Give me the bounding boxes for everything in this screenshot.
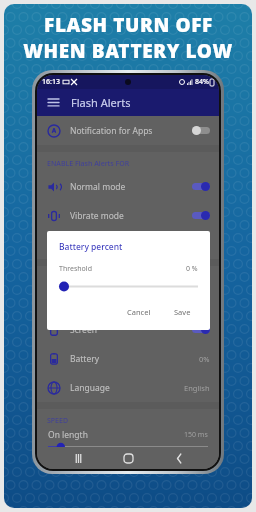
staticText: Flash Alerts xyxy=(71,95,131,110)
staticText: SPEED xyxy=(47,416,69,426)
staticText: Cancel xyxy=(127,307,151,317)
button[interactable]: On xyxy=(192,211,210,220)
button[interactable]: Off xyxy=(192,126,210,135)
staticText: 0% xyxy=(199,354,210,364)
staticText: Battery xyxy=(70,353,100,365)
button[interactable]: Menu xyxy=(45,95,61,111)
staticText: On length xyxy=(48,429,88,441)
staticText: FLASH TURN OFF xyxy=(44,12,213,38)
staticText: WHEN BATTERY LOW xyxy=(23,38,233,64)
button[interactable]: Screen xyxy=(37,315,219,344)
staticText: English xyxy=(184,383,210,393)
button[interactable]: On xyxy=(192,325,210,334)
staticText: 84% xyxy=(195,77,209,87)
staticText: Silent mode xyxy=(70,239,118,251)
staticText: ADVANCED xyxy=(47,273,85,283)
button[interactable]: Recents xyxy=(68,448,88,468)
staticText: 0 % xyxy=(186,264,198,274)
button[interactable]: Battery xyxy=(37,344,219,373)
button[interactable]: Flash xyxy=(37,286,219,315)
button[interactable]: Notification for Apps xyxy=(37,116,219,145)
button[interactable]: Language xyxy=(37,373,219,402)
staticText: 150 ms xyxy=(184,430,208,440)
button[interactable]: Cancel xyxy=(120,304,158,320)
button[interactable] xyxy=(59,281,198,292)
staticText: Battery percent xyxy=(59,241,123,253)
button[interactable]: Save xyxy=(167,304,198,320)
staticText: Notification for Apps xyxy=(70,125,153,137)
button[interactable]: Vibrate mode xyxy=(37,201,219,230)
staticText: Save xyxy=(174,307,191,317)
button[interactable]: Normal mode xyxy=(37,172,219,201)
staticText: 16:13 xyxy=(42,77,60,87)
staticText: Threshold xyxy=(59,264,92,274)
staticText: ENABLE Flash Alerts FOR xyxy=(47,159,130,169)
button[interactable]: Home xyxy=(118,448,138,468)
staticText: Language xyxy=(70,382,110,394)
button[interactable]: Back xyxy=(169,448,189,468)
staticText: Vibrate mode xyxy=(70,210,124,222)
button[interactable]: On xyxy=(192,182,210,191)
staticText: Normal mode xyxy=(70,181,126,193)
staticText: Screen xyxy=(70,324,97,336)
button[interactable]: Silent mode xyxy=(37,230,219,259)
